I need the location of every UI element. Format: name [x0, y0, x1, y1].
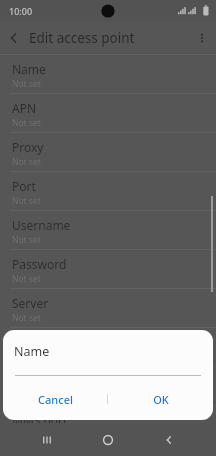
- staticText: MMS port: [12, 412, 68, 428]
- staticText: MMSC: [12, 334, 48, 350]
- staticText: Not set: [12, 273, 41, 285]
- staticText: Password: [12, 256, 67, 272]
- button[interactable]: Password: [0, 250, 216, 289]
- staticText: MMS proxy: [12, 373, 76, 389]
- button[interactable]: Recent apps: [34, 427, 60, 453]
- staticText: Edit access point: [29, 29, 135, 47]
- staticText: Not set: [12, 351, 41, 363]
- staticText: Not set: [12, 195, 41, 207]
- button[interactable]: Port: [0, 172, 216, 211]
- button[interactable]: Home: [95, 427, 121, 453]
- button[interactable]: MMSC: [0, 328, 216, 367]
- staticText: Not set: [12, 117, 41, 129]
- button[interactable]: MMS proxy: [0, 367, 216, 406]
- staticText: Name: [12, 61, 46, 77]
- staticText: OK: [153, 392, 169, 407]
- staticText: APN: [12, 100, 37, 116]
- staticText: Not set: [12, 78, 41, 90]
- staticText: Not set: [12, 312, 41, 324]
- button[interactable]: Name: [0, 55, 216, 94]
- button[interactable]: Cancel: [3, 384, 107, 414]
- staticText: Not set: [12, 390, 41, 402]
- staticText: Proxy: [12, 139, 44, 155]
- button[interactable]: More options: [188, 24, 216, 52]
- staticText: Name: [14, 343, 50, 360]
- staticText: 10:00: [9, 5, 33, 17]
- button[interactable]: Back: [0, 24, 28, 52]
- button[interactable]: Proxy: [0, 133, 216, 172]
- staticText: Port: [12, 178, 36, 194]
- button[interactable]: Username: [0, 211, 216, 250]
- staticText: Username: [12, 217, 71, 233]
- staticText: Server: [12, 295, 49, 311]
- button[interactable]: Back: [156, 427, 182, 453]
- button[interactable]: APN: [0, 94, 216, 133]
- staticText: Not set: [12, 156, 41, 168]
- staticText: Not set: [12, 234, 41, 246]
- button[interactable]: MMS port: [0, 406, 216, 445]
- button[interactable]: Server: [0, 289, 216, 328]
- button[interactable]: OK: [108, 384, 213, 414]
- staticText: Cancel: [38, 392, 73, 407]
